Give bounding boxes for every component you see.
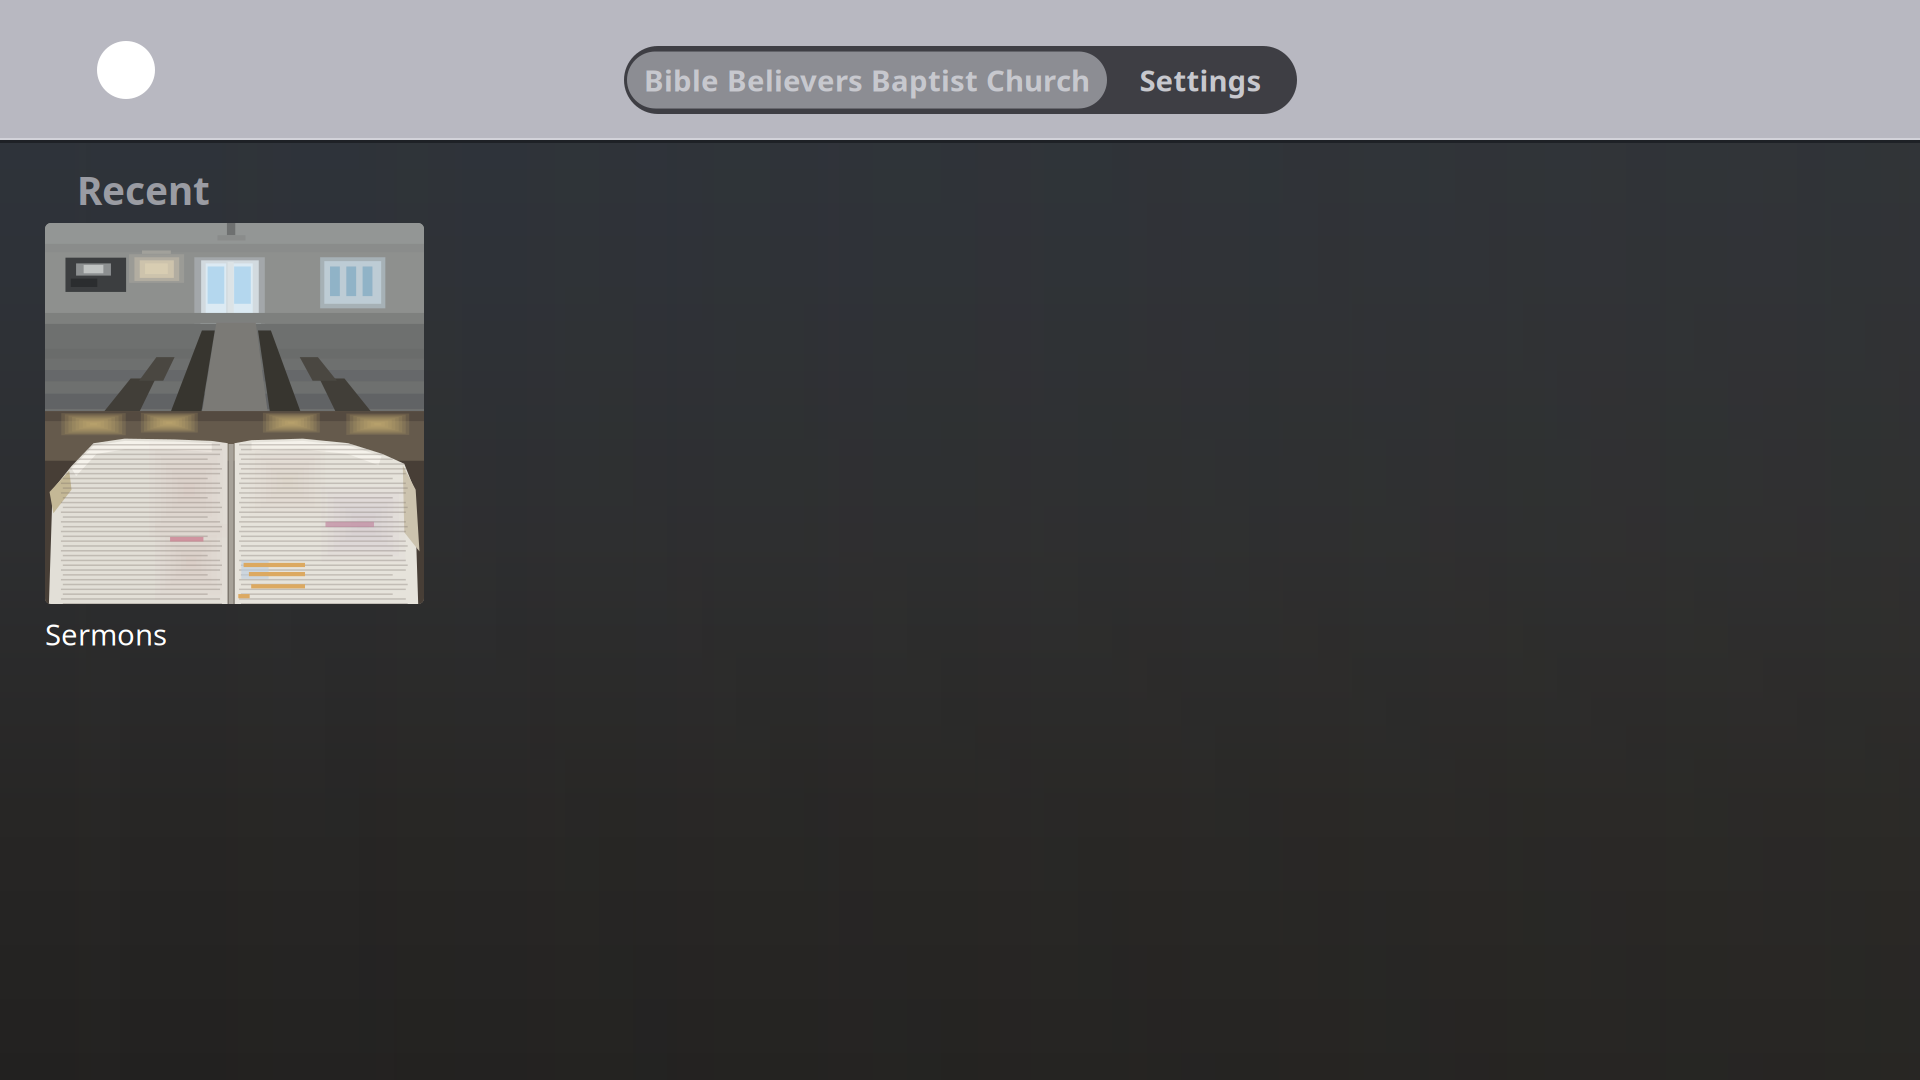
- staticText: Bible Believers Baptist Church: [644, 60, 1090, 99]
- button[interactable]: Account: [97, 41, 155, 99]
- button[interactable]: Sermons: [45, 223, 424, 604]
- staticText: Sermons: [45, 614, 167, 653]
- staticText: Recent: [77, 164, 210, 216]
- staticText: Settings: [1139, 60, 1261, 99]
- button[interactable]: Settings: [1107, 51, 1294, 108]
- button[interactable]: Bible Believers Baptist Church: [627, 51, 1107, 108]
